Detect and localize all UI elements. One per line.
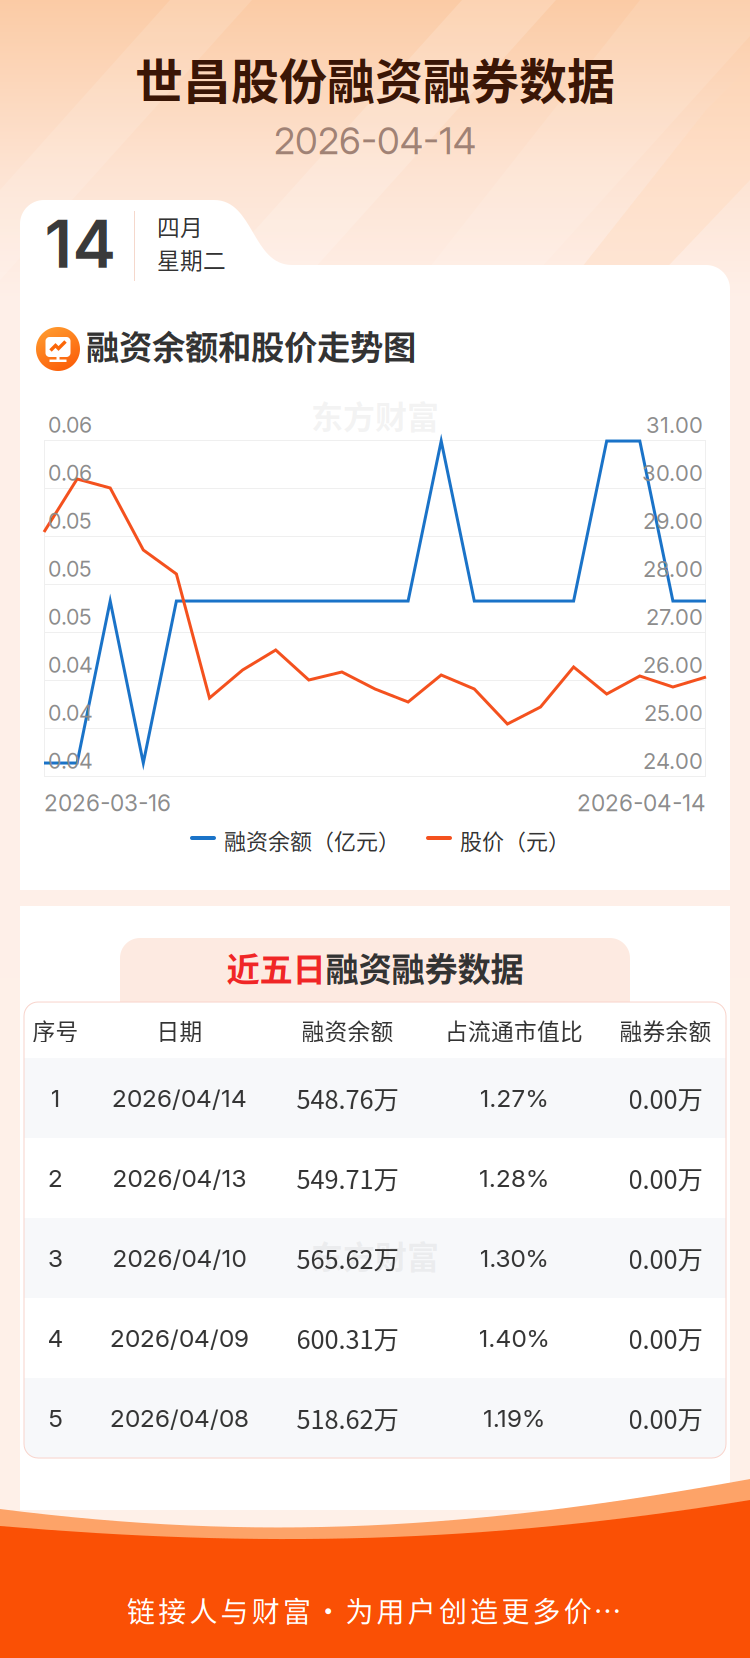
staticText: 0.06: [48, 460, 92, 486]
staticText: 星期二: [157, 243, 226, 275]
staticText: 2026-03-16: [44, 789, 171, 817]
staticText: 融资余额（亿元）: [224, 824, 400, 856]
staticText: 2026/04/09: [110, 1323, 249, 1353]
staticText: 融资余额和股价走势图: [86, 321, 416, 369]
staticText: 24.00: [643, 748, 703, 774]
staticText: 占流通市值比: [445, 1014, 583, 1046]
staticText: 4: [47, 1323, 63, 1353]
staticText: 融资融券数据: [325, 943, 523, 991]
staticText: 518.62万: [296, 1400, 398, 1436]
staticText: 四月: [157, 210, 203, 242]
staticText: 0.00万: [628, 1240, 702, 1276]
staticText: 序号: [32, 1014, 78, 1046]
staticText: 0.00万: [628, 1160, 702, 1196]
staticText: 565.62万: [296, 1240, 398, 1276]
staticText: 1.30%: [479, 1243, 548, 1273]
staticText: 0.00万: [628, 1320, 702, 1356]
staticText: 0.05: [48, 604, 92, 630]
staticText: 日期: [156, 1014, 202, 1046]
staticText: 5: [48, 1403, 62, 1433]
staticText: 1.28%: [479, 1163, 549, 1193]
staticText: 27.00: [646, 604, 703, 630]
staticText: 28.00: [643, 556, 703, 582]
staticText: 2026/04/14: [112, 1083, 247, 1113]
staticText: 链接人与财富·为用户创造更多价值: [127, 1590, 623, 1630]
staticText: 近五日: [226, 943, 325, 991]
staticText: 31.00: [646, 412, 703, 438]
staticText: 0.00万: [628, 1080, 702, 1116]
staticText: 2026/04/13: [112, 1163, 246, 1193]
staticText: 1.19%: [483, 1403, 545, 1433]
staticText: 1.40%: [478, 1323, 549, 1353]
staticText: 2026-04-14: [274, 119, 476, 163]
staticText: 融资余额: [301, 1014, 393, 1046]
staticText: 1: [50, 1083, 60, 1113]
staticText: 26.00: [643, 652, 703, 678]
staticText: 3: [48, 1243, 63, 1273]
staticText: 0.05: [48, 508, 92, 534]
staticText: 融券余额: [619, 1014, 711, 1046]
staticText: 0.05: [48, 556, 92, 582]
staticText: 2026-04-14: [577, 789, 706, 817]
staticText: 0.04: [48, 652, 93, 678]
staticText: 2026/04/08: [110, 1403, 249, 1433]
staticText: 东方财富: [311, 392, 439, 438]
staticText: 0.04: [48, 700, 93, 726]
staticText: 1.27%: [479, 1083, 548, 1113]
staticText: 股价（元）: [460, 824, 570, 856]
staticText: 30.00: [642, 460, 703, 486]
staticText: 2: [48, 1163, 63, 1193]
staticText: 0.00万: [628, 1400, 702, 1436]
staticText: 0.06: [48, 412, 92, 438]
staticText: 2026/04/10: [112, 1243, 246, 1273]
staticText: 549.71万: [296, 1160, 398, 1196]
staticText: 0.04: [48, 748, 93, 774]
staticText: 548.76万: [296, 1080, 398, 1116]
staticText: 14: [44, 204, 116, 283]
staticText: 25.00: [644, 700, 703, 726]
staticText: 东方财富: [311, 1232, 439, 1278]
staticText: 世昌股份融资融券数据: [135, 43, 615, 113]
staticText: 29.00: [643, 508, 703, 534]
staticText: 600.31万: [296, 1320, 398, 1356]
